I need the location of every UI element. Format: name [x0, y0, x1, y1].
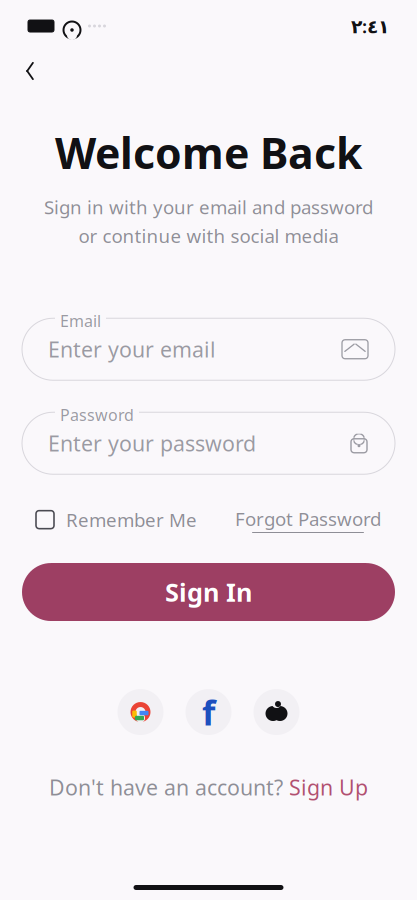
staticText: Email — [60, 310, 101, 331]
staticText: Welcome Back — [55, 124, 362, 181]
staticText: Sign in with your email and password — [44, 195, 373, 219]
button[interactable]: Don't have an account? — [49, 767, 368, 807]
button[interactable]: Sign in with Apple — [253, 689, 299, 735]
staticText: or continue with social media — [78, 223, 338, 248]
button[interactable]: Sign in with Facebook — [185, 689, 231, 735]
staticText: Forgot Password — [235, 506, 381, 531]
staticText: Don't have an account? — [49, 773, 283, 801]
staticText: ٢:٤١ — [351, 14, 389, 38]
button[interactable]: Back — [8, 50, 52, 92]
staticText: f — [202, 689, 215, 735]
button[interactable]: Sign in with Google — [117, 689, 163, 735]
button[interactable]: Forgot Password — [235, 498, 381, 541]
staticText: Enter your password — [48, 429, 256, 457]
staticText: Enter your email — [48, 335, 216, 363]
staticText: Remember Me — [66, 507, 197, 532]
staticText: Password — [60, 404, 134, 425]
button[interactable]: Sign In — [22, 563, 395, 621]
staticText: Sign Up — [289, 773, 368, 801]
staticText: Sign In — [165, 575, 252, 609]
button[interactable]: Remember Me — [36, 499, 197, 540]
